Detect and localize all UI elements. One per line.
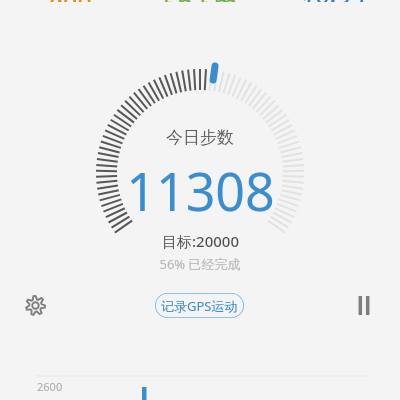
button[interactable]: Settings [19,289,51,321]
staticText: 目标:20000 [162,231,239,251]
staticText: 5h 5m [163,0,238,2]
staticText: 记录GPS运动 [161,297,238,315]
staticText: 11308 [126,155,275,226]
staticText: 2600 [37,379,63,394]
button[interactable]: Pause [348,289,380,321]
staticText: 56% 已经完成 [159,255,241,273]
staticText: 7:00 [42,0,92,2]
staticText: 今日步数 [166,127,234,148]
button[interactable]: 记录GPS运动 [155,293,244,318]
staticText: 18:32 [301,0,366,2]
